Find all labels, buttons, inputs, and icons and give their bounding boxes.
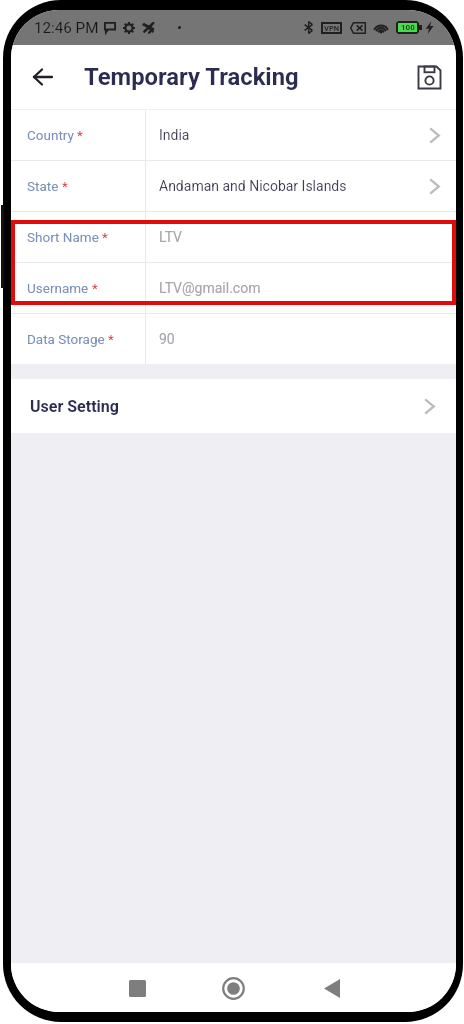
button[interactable]: Country (11, 110, 456, 160)
staticText: State (27, 178, 59, 194)
button[interactable]: Back (23, 57, 63, 97)
button[interactable]: Home (216, 971, 250, 1005)
staticText: LTV (159, 229, 183, 245)
staticText: Username (27, 280, 89, 296)
staticText: Country (27, 127, 74, 143)
staticText: * (108, 331, 114, 347)
button[interactable]: Short Name (11, 212, 456, 262)
staticText: LTV@gmail.com (159, 280, 261, 296)
staticText: * (92, 280, 98, 296)
staticText: Andaman and Nicobar Islands (159, 178, 347, 194)
button[interactable]: State (11, 161, 456, 211)
staticText: * (102, 229, 108, 245)
staticText: Data Storage (27, 331, 105, 347)
button[interactable]: Back (315, 971, 349, 1005)
staticText: User Setting (30, 397, 119, 416)
button[interactable]: User Setting (11, 379, 456, 433)
staticText: * (77, 127, 83, 143)
staticText: 90 (159, 331, 175, 347)
staticText: Short Name (27, 229, 99, 245)
button[interactable]: Recents (120, 971, 154, 1005)
staticText: VPN (324, 24, 340, 33)
staticText: 12:46 PM (34, 19, 99, 37)
button[interactable]: Data Storage (11, 314, 456, 364)
staticText: India (159, 127, 190, 143)
staticText: Temporary Tracking (84, 63, 299, 91)
staticText: * (62, 178, 68, 194)
button[interactable]: Username (11, 263, 456, 313)
staticText: 100 (401, 23, 415, 32)
button[interactable]: Save (409, 57, 449, 97)
